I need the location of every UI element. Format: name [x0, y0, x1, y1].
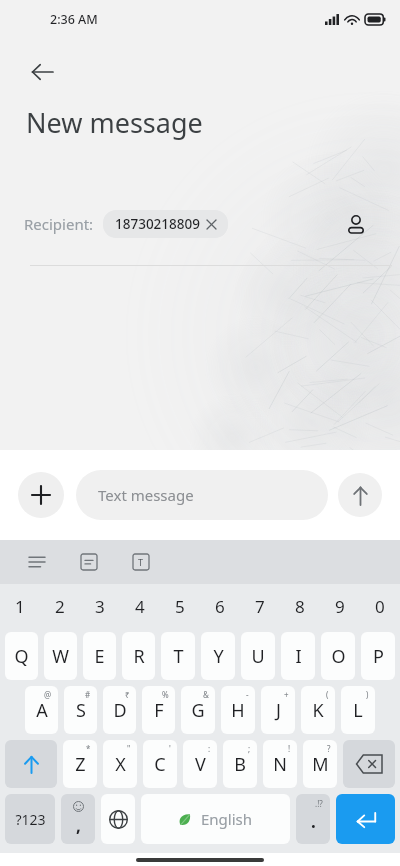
button[interactable]: 0 [360, 584, 400, 629]
button[interactable]: Z [63, 740, 97, 788]
staticText: ! [288, 743, 291, 754]
staticText: 8 [295, 595, 305, 618]
button[interactable]: J [261, 686, 295, 734]
button[interactable]: 2 [40, 584, 80, 629]
staticText: , [76, 814, 81, 837]
staticText: .!? [315, 798, 323, 809]
button[interactable]: Enter [336, 794, 395, 844]
button[interactable]: 9 [320, 584, 360, 629]
staticText: 3 [95, 595, 105, 618]
button[interactable]: X [103, 740, 137, 788]
button[interactable]: S [64, 686, 97, 734]
button[interactable]: I [281, 632, 315, 680]
button[interactable]: 1 [0, 584, 40, 629]
button[interactable]: 4 [120, 584, 160, 629]
button[interactable]: M [303, 740, 337, 788]
staticText: G [191, 698, 205, 723]
button[interactable]: Clipboard [74, 547, 104, 577]
staticText: Y [213, 644, 224, 669]
button[interactable]: B [223, 740, 257, 788]
button[interactable]: F [142, 686, 175, 734]
button[interactable]: V [183, 740, 217, 788]
staticText: English [201, 809, 253, 829]
button[interactable]: ?123 [5, 794, 55, 844]
staticText: 2:36 AM [50, 11, 98, 28]
button[interactable]: H [221, 686, 255, 734]
staticText: 18730218809 [115, 215, 200, 233]
staticText: M [312, 752, 329, 777]
staticText: X [115, 752, 126, 777]
staticText: L [353, 698, 363, 723]
button[interactable]: P [361, 632, 395, 680]
button[interactable]: Q [5, 632, 38, 680]
staticText: - [246, 689, 249, 700]
button[interactable]: 7 [240, 584, 280, 629]
button[interactable]: L [341, 686, 375, 734]
staticText: . [311, 810, 316, 833]
button[interactable]: Add attachment [18, 472, 64, 518]
button[interactable]: 3 [80, 584, 120, 629]
button[interactable]: 18730218809 [103, 210, 228, 238]
staticText: T [173, 644, 184, 669]
staticText: E [94, 644, 105, 669]
button[interactable]: 6 [200, 584, 240, 629]
staticText: J [276, 698, 281, 723]
staticText: ? [327, 743, 331, 754]
button[interactable]: Text editing [126, 547, 156, 577]
button[interactable]: R [122, 632, 155, 680]
staticText: : [208, 743, 211, 754]
button[interactable]: English [141, 794, 290, 844]
staticText: U [251, 644, 265, 669]
staticText: H [231, 698, 245, 723]
button[interactable]: C [143, 740, 177, 788]
button[interactable]: Shift [5, 740, 57, 788]
staticText: T [138, 556, 144, 568]
button[interactable]: .!? [296, 794, 330, 844]
button[interactable]: Menu [22, 547, 52, 577]
staticText: ; [248, 743, 251, 754]
button[interactable]: 5 [160, 584, 200, 629]
button[interactable]: E [83, 632, 116, 680]
staticText: R [133, 644, 145, 669]
staticText: 0 [375, 595, 385, 618]
button[interactable]: Y [201, 632, 235, 680]
staticText: 2 [55, 595, 65, 618]
button[interactable]: Back [20, 50, 64, 94]
staticText: & [203, 689, 209, 700]
staticText: I [295, 644, 302, 669]
button[interactable]: G [181, 686, 215, 734]
staticText: ₹ [125, 689, 130, 700]
button[interactable]: T [161, 632, 195, 680]
button[interactable]: Contacts [336, 204, 376, 244]
staticText: B [234, 752, 246, 777]
button[interactable]: A [25, 686, 58, 734]
button[interactable]: , [61, 794, 95, 844]
staticText: " [127, 743, 131, 754]
staticText: C [154, 752, 166, 777]
button[interactable]: Backspace [343, 740, 395, 788]
staticText: 1 [15, 595, 25, 618]
button[interactable]: O [321, 632, 355, 680]
staticText: P [373, 644, 384, 669]
button[interactable]: W [44, 632, 77, 680]
staticText: A [36, 698, 48, 723]
staticText: ?123 [15, 810, 46, 829]
staticText: ' [169, 743, 171, 754]
button[interactable]: Send [338, 473, 382, 517]
button[interactable]: N [263, 740, 297, 788]
button[interactable]: K [301, 686, 335, 734]
button[interactable]: 8 [280, 584, 320, 629]
staticText: W [52, 644, 69, 669]
staticText: 4 [135, 595, 145, 618]
staticText: Q [14, 644, 29, 669]
button[interactable]: D [103, 686, 136, 734]
button[interactable]: Change language [101, 794, 135, 844]
staticText: V [195, 752, 206, 777]
staticText: + [284, 689, 289, 700]
button[interactable]: Text message [76, 470, 328, 520]
button[interactable]: U [241, 632, 275, 680]
staticText: New message [26, 104, 203, 141]
staticText: 5 [175, 595, 185, 618]
staticText: S [76, 698, 86, 723]
staticText: 7 [255, 595, 265, 618]
